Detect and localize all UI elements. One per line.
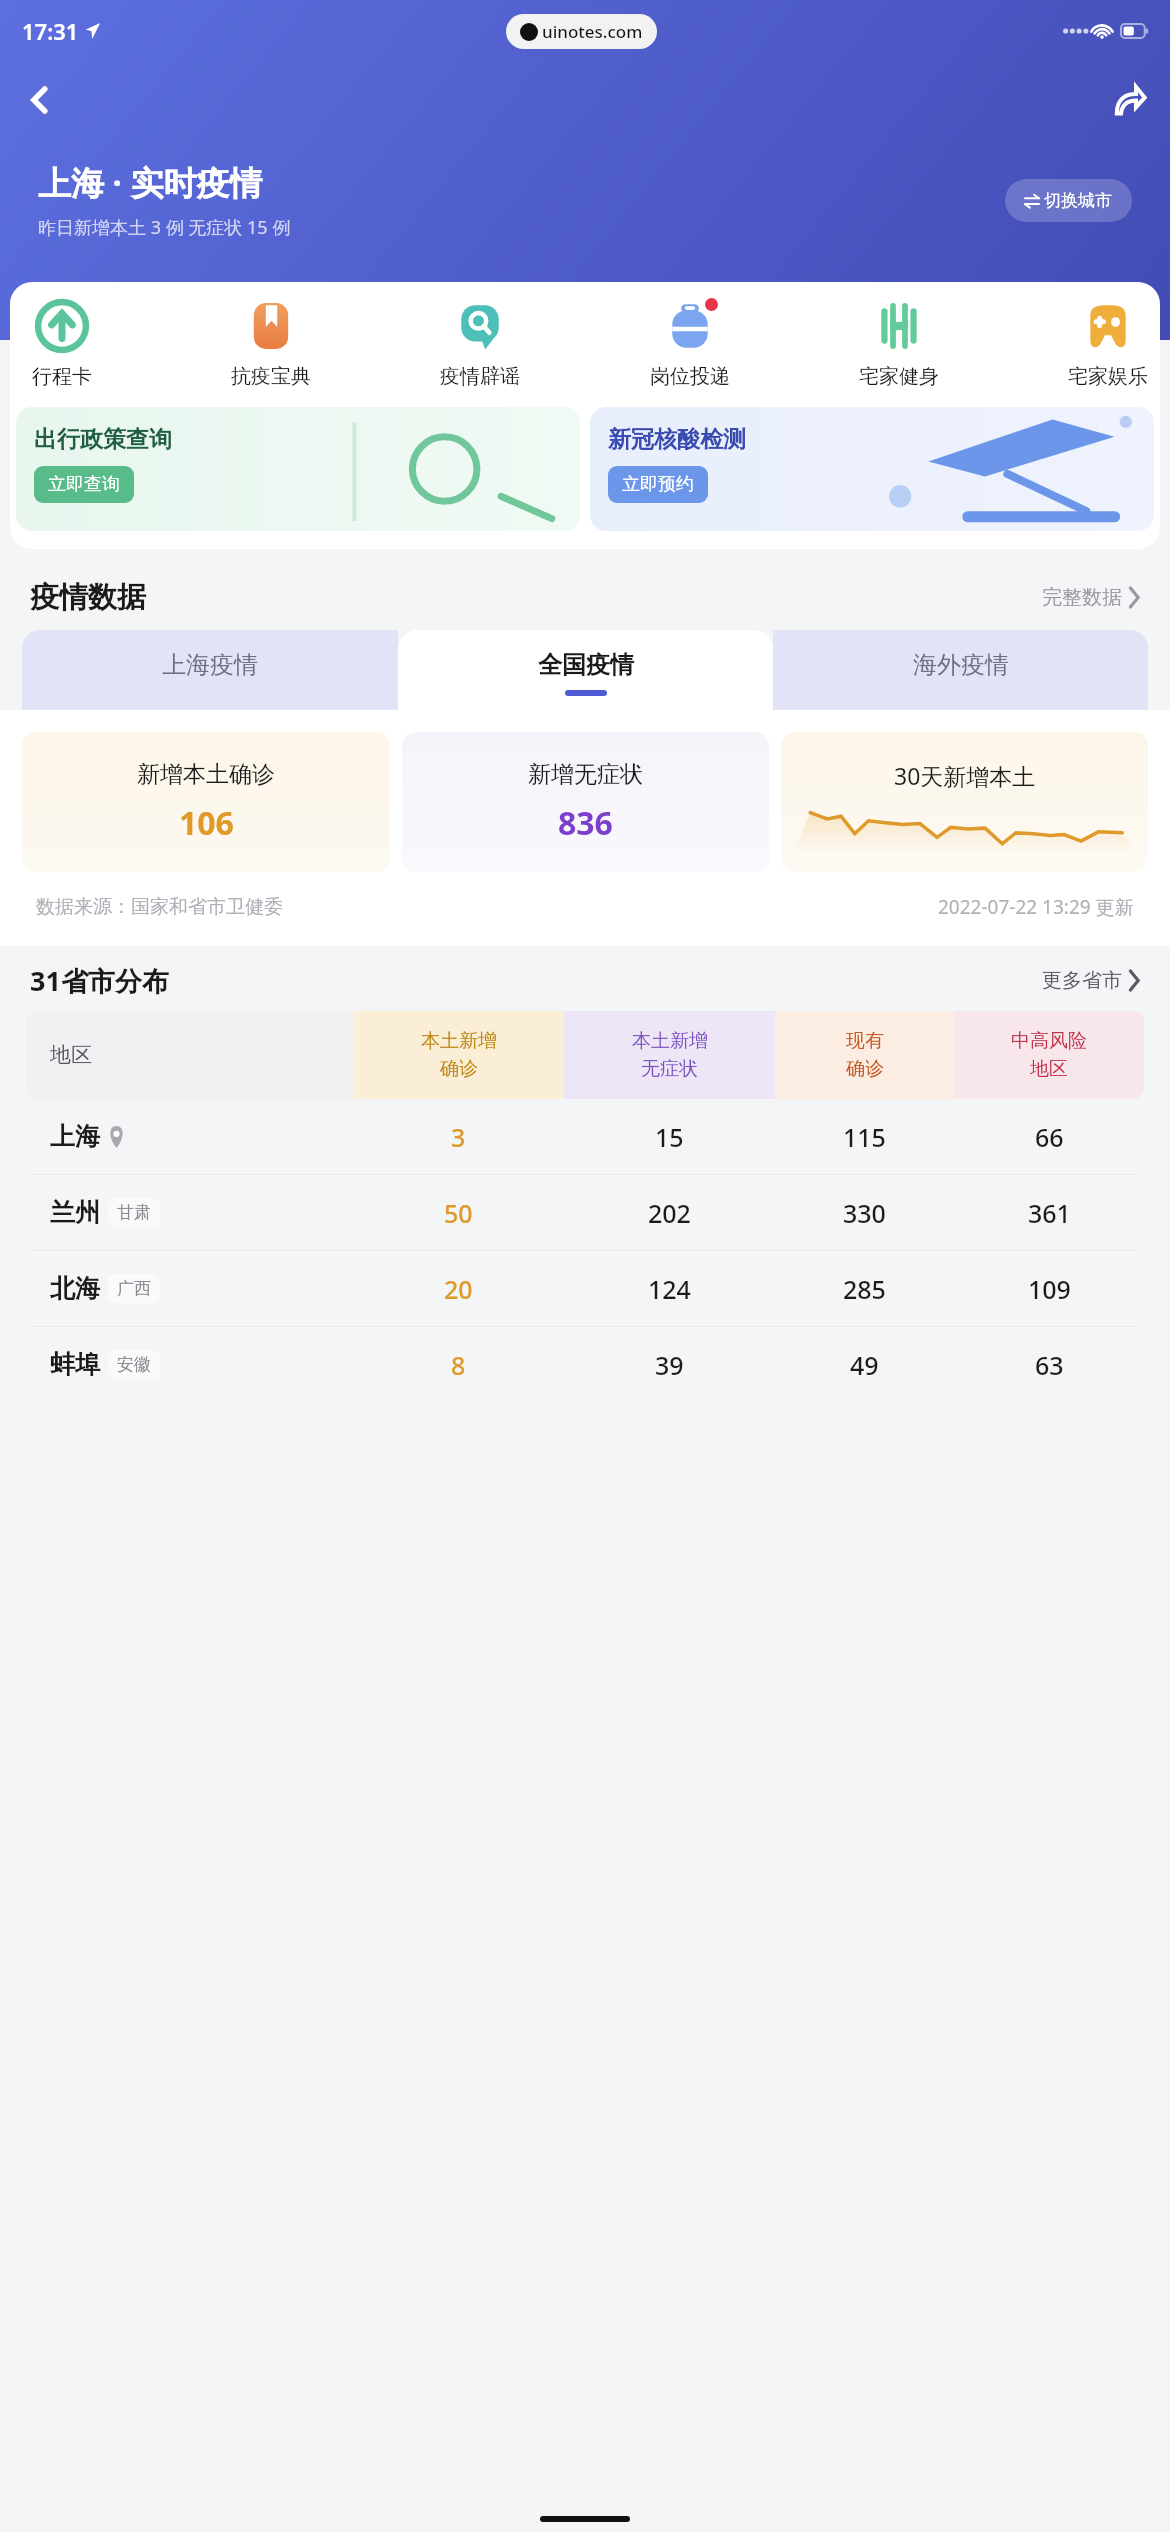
- staticText: 20: [444, 1272, 473, 1306]
- button[interactable]: 完整数据: [1042, 585, 1140, 610]
- button[interactable]: 宅家健身: [851, 300, 947, 389]
- staticText: 新增本土确诊: [137, 760, 275, 789]
- button[interactable]: 30天新增本土: [781, 732, 1148, 872]
- staticText: 124: [648, 1272, 691, 1306]
- button[interactable]: Share: [1102, 72, 1158, 128]
- button[interactable]: 兰州: [0, 1175, 1170, 1250]
- staticText: 北海: [50, 1273, 100, 1304]
- staticText: 现有: [846, 1029, 884, 1053]
- staticText: 确诊: [440, 1057, 478, 1081]
- button[interactable]: 上海: [0, 1099, 1170, 1174]
- button[interactable]: 新冠核酸检测: [590, 407, 1154, 531]
- staticText: 2022-07-22 13:29 更新: [938, 894, 1134, 920]
- staticText: 285: [843, 1272, 886, 1306]
- staticText: 海外疫情: [913, 650, 1009, 680]
- staticText: 地区: [1030, 1057, 1068, 1081]
- staticText: 地区: [50, 1042, 92, 1068]
- staticText: 无症状: [641, 1057, 698, 1081]
- staticText: 完整数据: [1042, 585, 1122, 610]
- staticText: 15: [655, 1120, 684, 1154]
- staticText: 宅家健身: [859, 364, 939, 389]
- staticText: 蚌埠: [50, 1349, 100, 1380]
- staticText: 63: [1035, 1348, 1064, 1382]
- staticText: 49: [850, 1348, 879, 1382]
- staticText: 本土新增: [632, 1029, 708, 1053]
- button[interactable]: 海外疫情: [773, 630, 1148, 710]
- button[interactable]: 切换城市: [1005, 179, 1132, 222]
- staticText: 31省市分布: [30, 962, 169, 999]
- staticText: 兰州: [50, 1197, 100, 1228]
- staticText: 361: [1028, 1196, 1071, 1230]
- button[interactable]: 疫情辟谣: [432, 300, 528, 389]
- staticText: 全国疫情: [538, 650, 634, 680]
- staticText: 立即预约: [622, 473, 694, 496]
- staticText: uinotes.com: [542, 20, 643, 43]
- button[interactable]: 出行政策查询: [16, 407, 580, 531]
- button[interactable]: 蚌埠: [0, 1327, 1170, 1402]
- staticText: 安徽: [117, 1354, 151, 1375]
- staticText: 106: [179, 801, 234, 845]
- button[interactable]: 新增本土确诊: [22, 732, 390, 872]
- staticText: 上海 · 实时疫情: [38, 160, 263, 205]
- staticText: 行程卡: [32, 364, 92, 389]
- staticText: 岗位投递: [650, 364, 730, 389]
- staticText: 30天新增本土: [894, 760, 1036, 791]
- button[interactable]: 新增无症状: [402, 732, 769, 872]
- staticText: 数据来源：国家和省市卫健委: [36, 895, 283, 919]
- staticText: 330: [843, 1196, 886, 1230]
- staticText: 昨日新增本土 3 例 无症状 15 例: [38, 215, 291, 240]
- staticText: 17:31: [22, 16, 79, 46]
- staticText: 新增无症状: [528, 760, 643, 789]
- staticText: 更多省市: [1042, 968, 1122, 993]
- staticText: 新冠核酸检测: [608, 425, 746, 454]
- staticText: 中高风险: [1011, 1029, 1087, 1053]
- button[interactable]: 岗位投递: [642, 300, 738, 389]
- staticText: 66: [1035, 1120, 1064, 1154]
- button[interactable]: 抗疫宝典: [223, 300, 319, 389]
- button[interactable]: 北海: [0, 1251, 1170, 1326]
- staticText: 8: [451, 1348, 466, 1382]
- staticText: 甘肃: [117, 1202, 151, 1223]
- staticText: 疫情辟谣: [440, 364, 520, 389]
- button[interactable]: 全国疫情: [398, 630, 773, 710]
- staticText: 出行政策查询: [34, 425, 172, 454]
- staticText: 立即查询: [48, 473, 120, 496]
- staticText: 836: [558, 801, 613, 845]
- button[interactable]: 宅家娱乐: [1060, 300, 1156, 389]
- staticText: 115: [843, 1120, 886, 1154]
- staticText: 上海疫情: [162, 650, 258, 680]
- staticText: 确诊: [846, 1057, 884, 1081]
- staticText: 3: [451, 1120, 466, 1154]
- staticText: 109: [1028, 1272, 1071, 1306]
- button[interactable]: 上海疫情: [22, 630, 398, 710]
- staticText: 切换城市: [1044, 190, 1112, 211]
- button[interactable]: 行程卡: [14, 300, 110, 389]
- staticText: 疫情数据: [30, 579, 146, 616]
- staticText: 本土新增: [421, 1029, 497, 1053]
- staticText: 抗疫宝典: [231, 364, 311, 389]
- staticText: 50: [444, 1196, 473, 1230]
- staticText: 广西: [117, 1278, 151, 1299]
- staticText: 202: [648, 1196, 691, 1230]
- button[interactable]: Back: [12, 72, 68, 128]
- staticText: 上海: [50, 1121, 100, 1152]
- button[interactable]: 更多省市: [1042, 968, 1140, 993]
- staticText: 宅家娱乐: [1068, 364, 1148, 389]
- staticText: 39: [655, 1348, 684, 1382]
